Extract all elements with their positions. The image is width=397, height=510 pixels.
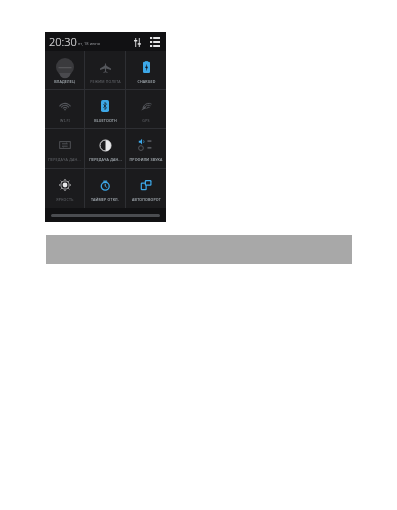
staticText: ПРОФИЛИ ЗВУКА — [129, 157, 163, 162]
button[interactable]: Settings — [130, 35, 144, 49]
staticText: вт, 18 июня — [78, 41, 101, 46]
staticText: РЕЖИМ ПОЛЕТА — [90, 79, 121, 84]
button[interactable]: АВТОПОВОРОТ — [126, 169, 166, 208]
staticText: 20:30 — [49, 34, 77, 49]
button[interactable]: ТАЙМЕР ОТКЛ. — [85, 169, 125, 208]
staticText: ПЕРЕДАЧА ДАН... — [48, 157, 81, 162]
staticText: АВТОПОВОРОТ — [132, 197, 161, 202]
button[interactable]: WI-FI — [45, 90, 84, 128]
button[interactable]: BLUETOOTH — [85, 90, 125, 128]
staticText: ПЕРЕДАЧА ДАН... — [89, 157, 122, 162]
staticText: ВЛАДЕЛЕЦ — [54, 79, 75, 84]
button[interactable]: РЕЖИМ ПОЛЕТА — [85, 51, 125, 89]
staticText: BLUETOOTH — [94, 118, 117, 123]
button[interactable]: Notifications list — [148, 35, 162, 49]
button[interactable]: CHARGED — [126, 51, 166, 89]
staticText: ТАЙМЕР ОТКЛ. — [91, 197, 119, 202]
staticText: ЯРКОСТЬ — [56, 197, 74, 202]
button[interactable]: ПЕРЕДАЧА ДАН... — [85, 129, 125, 168]
staticText: WI-FI — [60, 118, 70, 123]
button[interactable]: ЯРКОСТЬ — [45, 169, 84, 208]
staticText: CHARGED — [137, 79, 156, 84]
staticText: GPS — [142, 118, 150, 123]
button[interactable]: GPS — [126, 90, 166, 128]
button[interactable]: Collapse quick settings — [45, 208, 166, 222]
button[interactable]: ВЛАДЕЛЕЦ — [45, 51, 84, 89]
button[interactable]: ПРОФИЛИ ЗВУКА — [126, 129, 166, 168]
button[interactable]: ПЕРЕДАЧА ДАН... — [45, 129, 84, 168]
